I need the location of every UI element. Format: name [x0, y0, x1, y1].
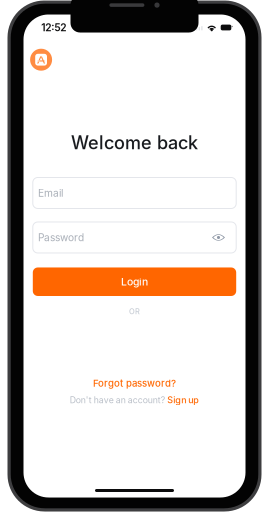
- staticText: Don't have an account?: [70, 395, 165, 405]
- staticText: Password: [38, 231, 84, 244]
- staticText: Sign up: [167, 395, 199, 405]
- button[interactable]: Password: [33, 222, 236, 253]
- button[interactable]: Forgot password?: [33, 377, 236, 389]
- staticText: Login: [121, 275, 148, 288]
- button[interactable]: Sign up: [167, 395, 199, 405]
- staticText: Forgot password?: [93, 377, 176, 389]
- staticText: OR: [129, 307, 140, 316]
- button[interactable]: Email: [33, 177, 236, 208]
- button[interactable]: Login: [33, 267, 236, 296]
- staticText: Email: [38, 187, 63, 199]
- staticText: 12:52: [41, 21, 66, 34]
- staticText: Welcome back: [71, 132, 198, 153]
